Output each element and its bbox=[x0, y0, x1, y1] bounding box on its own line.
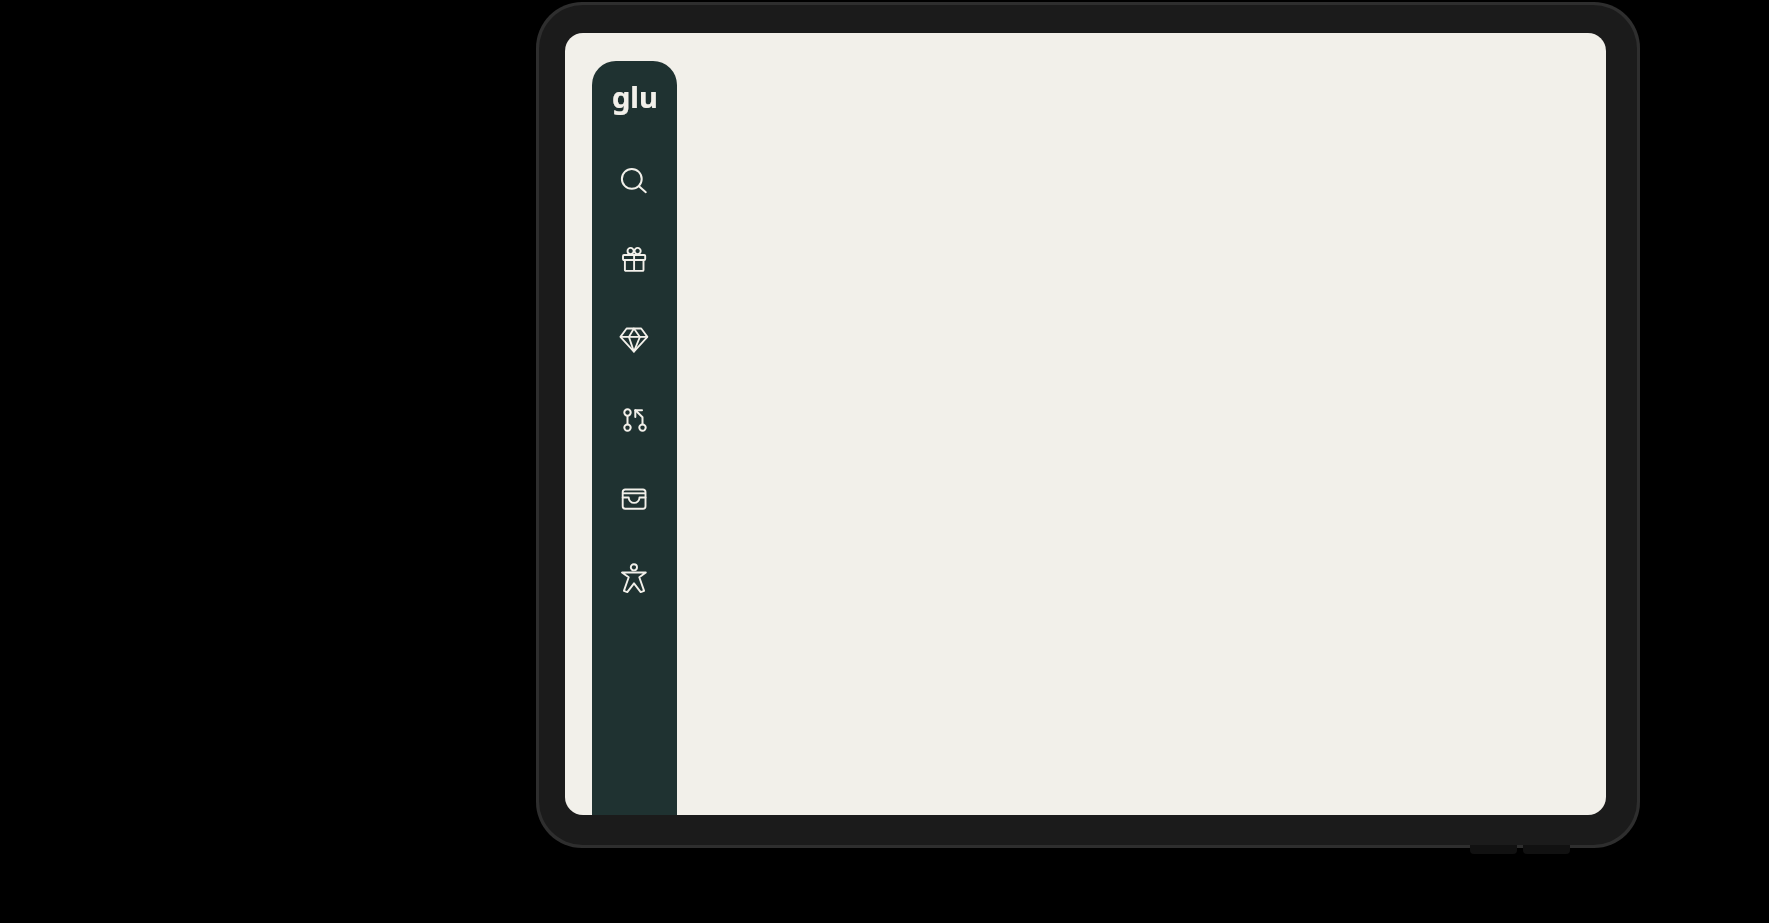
button[interactable] bbox=[610, 235, 658, 283]
button[interactable] bbox=[610, 155, 658, 203]
button[interactable] bbox=[610, 475, 658, 523]
button[interactable] bbox=[610, 316, 658, 364]
button[interactable] bbox=[610, 396, 658, 444]
button[interactable]: glu bbox=[592, 74, 677, 118]
staticText: glu bbox=[612, 77, 658, 116]
button[interactable] bbox=[610, 554, 658, 602]
